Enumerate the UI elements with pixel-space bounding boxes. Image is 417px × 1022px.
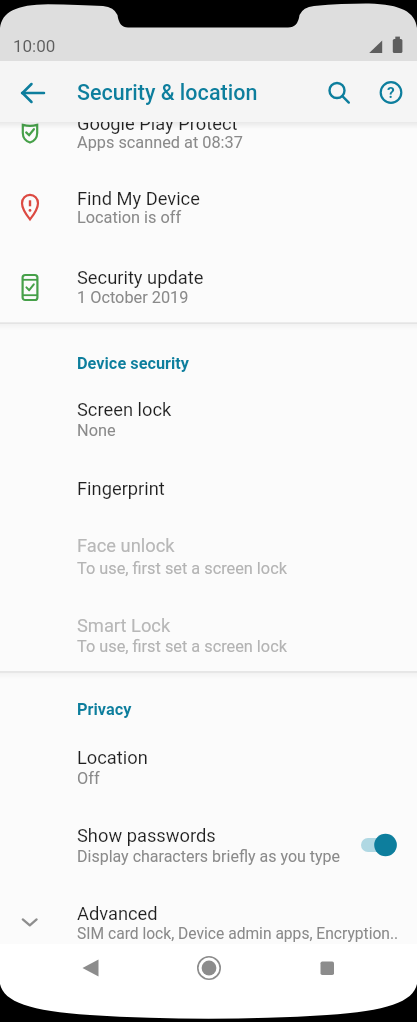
staticText: Location is off [77,208,182,227]
staticText: To use, first set a screen lock [77,637,287,656]
staticText: Location [77,747,148,768]
button[interactable] [0,170,417,248]
button[interactable] [0,122,417,170]
button[interactable]: ? [367,68,415,116]
staticText: Google Play Protect [77,113,238,134]
staticText: 10:00 [13,36,56,56]
button[interactable] [313,67,361,115]
button[interactable] [0,600,417,672]
button[interactable] [0,381,417,459]
staticText: 1 October 2019 [77,288,189,307]
staticText: Find My Device [77,188,200,209]
staticText: Show passwords [77,825,216,846]
button[interactable] [0,248,417,323]
button[interactable] [0,459,417,521]
button[interactable] [0,804,417,882]
button[interactable] [356,826,402,864]
staticText: Device security [77,354,190,373]
staticText: Display characters briefly as you type [77,847,341,866]
staticText: Security & location [77,80,258,105]
staticText: SIM card lock, Device admin apps, Encryp… [77,925,399,943]
staticText: Apps scanned at 08:37 [77,133,243,152]
button[interactable] [185,944,233,992]
staticText: Advanced [77,903,158,924]
staticText: Privacy [77,700,132,719]
staticText: Security update [77,267,204,288]
button[interactable] [303,944,351,992]
button[interactable] [9,69,57,117]
button[interactable] [0,882,417,944]
button[interactable] [0,728,417,804]
staticText: Fingerprint [77,478,165,499]
staticText: None [77,421,116,440]
staticText: ? [387,84,395,102]
button[interactable] [0,521,417,600]
staticText: Smart Lock [77,615,171,636]
staticText: Off [77,769,100,788]
staticText: Face unlock [77,535,175,556]
button[interactable] [66,944,114,992]
staticText: To use, first set a screen lock [77,559,287,578]
staticText: Screen lock [77,399,172,420]
